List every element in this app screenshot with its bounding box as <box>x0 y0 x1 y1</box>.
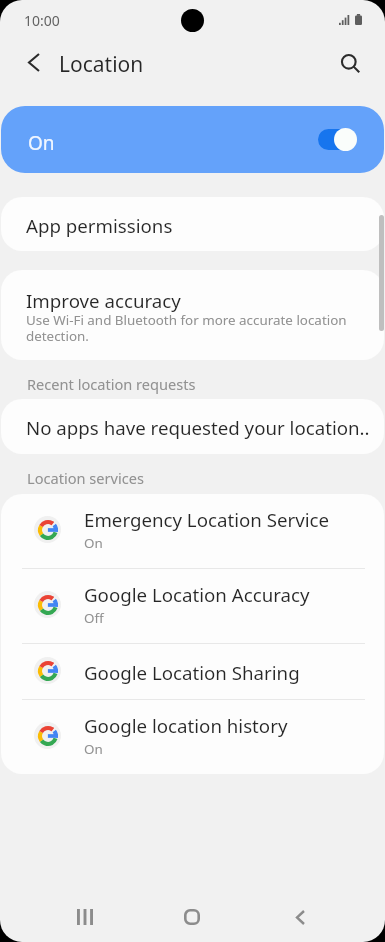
staticText: Emergency Location Service <box>84 507 330 532</box>
button[interactable]: Search <box>331 44 369 82</box>
staticText: Location services <box>27 468 144 488</box>
staticText: Google Location Sharing <box>84 660 300 685</box>
staticText: No apps have requested your location.. <box>26 415 370 440</box>
staticText: Improve accuracy <box>26 288 181 313</box>
staticText: App permissions <box>26 213 173 238</box>
button[interactable]: No apps have requested your location.. <box>1 399 384 454</box>
button[interactable]: Google Location Accuracy <box>1 569 384 644</box>
button[interactable]: Google location history <box>1 700 384 774</box>
button[interactable]: Google Location Sharing <box>1 644 384 700</box>
button[interactable]: Improve accuracy <box>1 270 384 360</box>
button[interactable]: Home <box>164 889 220 942</box>
staticText: Recent location requests <box>27 374 196 394</box>
staticText: 10:00 <box>24 11 60 30</box>
button[interactable]: On <box>1 106 384 173</box>
staticText: On <box>84 534 103 552</box>
staticText: Google location history <box>84 713 288 738</box>
button[interactable]: Emergency Location Service <box>1 494 384 569</box>
staticText: Location <box>59 50 144 79</box>
button[interactable]: Recents <box>57 889 113 942</box>
staticText: Google Location Accuracy <box>84 582 310 607</box>
staticText: On <box>84 740 103 758</box>
staticText: On <box>28 130 55 156</box>
button[interactable]: Back <box>15 43 53 81</box>
button[interactable]: Back <box>272 889 328 942</box>
staticText: Off <box>84 609 104 627</box>
staticText: Use Wi-Fi and Bluetooth for more accurat… <box>26 311 353 345</box>
button[interactable]: App permissions <box>1 197 384 251</box>
button[interactable] <box>318 128 357 151</box>
